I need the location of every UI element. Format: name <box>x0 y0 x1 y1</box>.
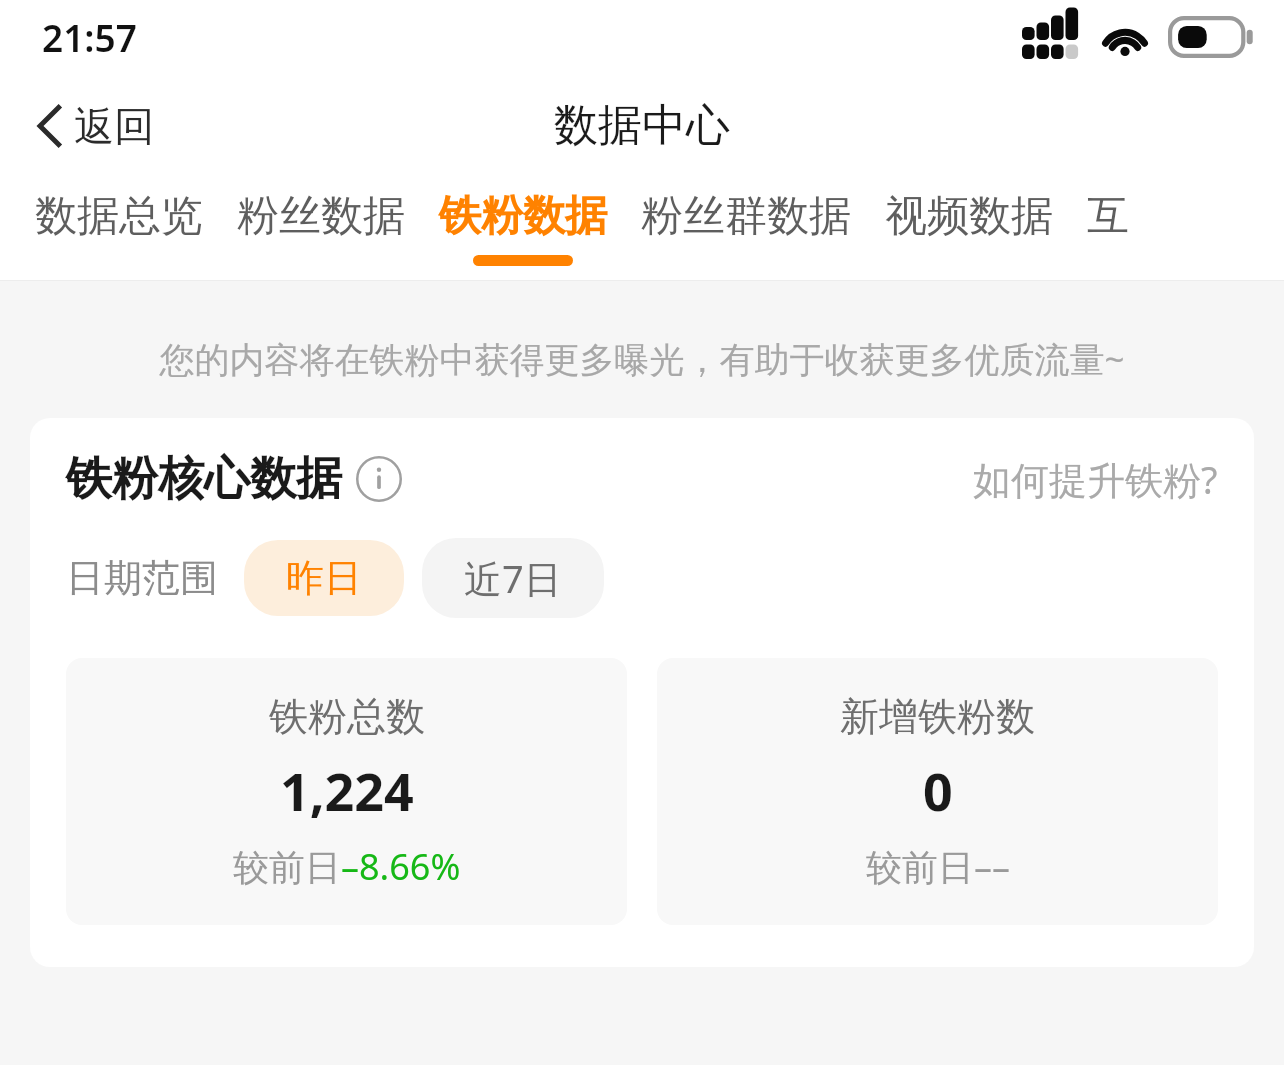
staticText: 0 <box>923 755 953 826</box>
staticText: 粉丝数据 <box>237 190 405 243</box>
staticText: 粉丝群数据 <box>641 190 851 243</box>
button[interactable]: 粉丝群数据 <box>641 178 851 255</box>
staticText: 铁粉总数 <box>269 692 425 741</box>
staticText: 铁粉核心数据 <box>66 450 342 508</box>
staticText: 视频数据 <box>885 190 1053 243</box>
button[interactable]: 粉丝数据 <box>237 178 405 255</box>
button[interactable]: 近7日 <box>422 538 604 618</box>
staticText: 您的内容将在铁粉中获得更多曝光，有助于收获更多优质流量~ <box>0 335 1284 383</box>
button[interactable]: 铁粉数据 <box>439 178 607 266</box>
staticText: 数据中心 <box>554 98 730 153</box>
staticText: 较前日–8.66% <box>233 842 461 891</box>
staticText: 数据总览 <box>35 190 203 243</box>
button[interactable]: 铁粉核心数据说明 <box>66 450 402 508</box>
staticText: 日期范围 <box>66 554 218 602</box>
staticText: 1,224 <box>280 755 414 826</box>
staticText: 近7日 <box>464 552 562 604</box>
staticText: 新增铁粉数 <box>840 692 1035 741</box>
button[interactable]: 视频数据 <box>885 178 1053 255</box>
button[interactable]: 昨日 <box>244 540 404 616</box>
button[interactable]: 如何提升铁粉? <box>973 453 1218 505</box>
button[interactable]: 数据总览 <box>35 178 203 255</box>
button[interactable]: 新增铁粉数 <box>657 658 1218 925</box>
staticText: 较前日–– <box>866 842 1010 891</box>
button[interactable]: 返回 <box>26 95 162 157</box>
staticText: 互 <box>1087 190 1129 243</box>
button[interactable]: 互 <box>1087 178 1129 255</box>
staticText: 铁粉数据 <box>439 190 607 243</box>
staticText: 昨日 <box>286 554 362 602</box>
button[interactable]: 铁粉总数 <box>66 658 627 925</box>
staticText: 21:57 <box>42 12 137 62</box>
staticText: 返回 <box>74 101 154 151</box>
